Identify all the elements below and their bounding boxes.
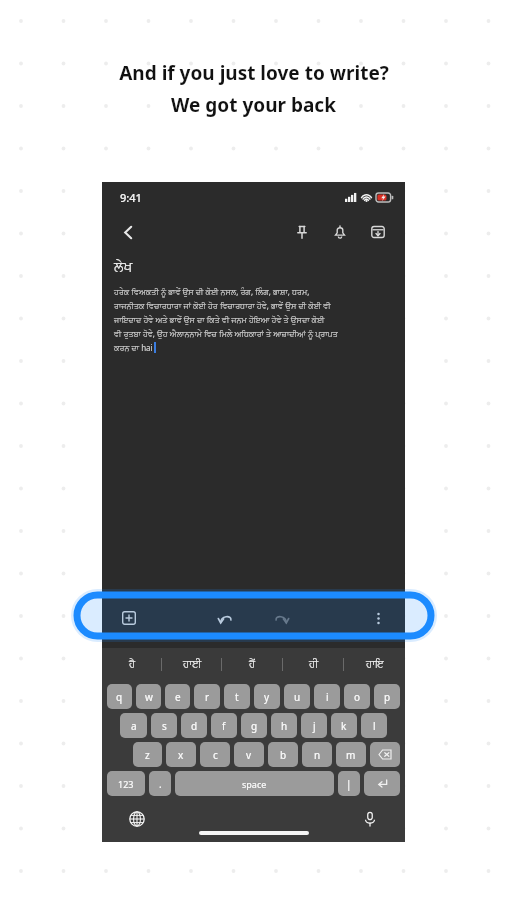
staticText: ਜਾਇਦਾਦ ਹੋਵੇ ਅਤੇ ਭਾਵੇਂ ਉਸ ਦਾ ਕਿਤੇ ਵੀ ਜਨਮ … <box>114 314 325 325</box>
button[interactable]: v <box>234 742 264 767</box>
button[interactable]: w <box>136 684 161 709</box>
staticText: v <box>246 748 252 762</box>
staticText: s <box>162 719 167 733</box>
button[interactable]: s <box>151 713 177 738</box>
button[interactable]: Change language <box>124 806 150 832</box>
staticText: z <box>145 748 150 762</box>
button[interactable]: Voice input <box>357 806 383 832</box>
staticText: ਹਰੇਕ ਵਿਅਕਤੀ ਨੂੰ ਭਾਵੇਂ ਉਸ ਦੀ ਕੋਈ ਨਸਲ, ਰੰਗ… <box>114 286 310 297</box>
button[interactable]: ਹੀ <box>283 648 344 680</box>
staticText: k <box>341 719 347 733</box>
button[interactable]: e <box>165 684 190 709</box>
staticText: | <box>346 777 352 791</box>
button[interactable]: k <box>331 713 357 738</box>
staticText: ਹੀ <box>309 659 319 669</box>
button[interactable]: | <box>338 771 360 796</box>
staticText: ਹੈਂ <box>249 659 256 669</box>
button[interactable]: space <box>175 771 334 796</box>
button[interactable]: Back <box>114 218 142 246</box>
button[interactable]: d <box>181 713 207 738</box>
staticText: b <box>280 748 287 762</box>
button[interactable]: ਹਾਇ <box>344 648 405 680</box>
staticText: a <box>131 719 137 733</box>
button[interactable]: t <box>224 684 250 709</box>
staticText: w <box>145 690 153 704</box>
button[interactable]: y <box>254 684 280 709</box>
button[interactable]: q <box>107 684 132 709</box>
button[interactable]: ਹੈ <box>102 648 162 680</box>
button[interactable]: Undo <box>210 603 240 633</box>
staticText: o <box>354 690 361 704</box>
button[interactable]: 123 <box>107 771 145 796</box>
staticText: space <box>242 778 267 790</box>
button[interactable]: m <box>336 742 366 767</box>
staticText: n <box>314 748 321 762</box>
staticText: e <box>175 690 181 704</box>
button[interactable]: . <box>149 771 171 796</box>
staticText: ਹਾਇ <box>366 659 384 669</box>
button[interactable]: f <box>211 713 237 738</box>
staticText: h <box>281 719 288 733</box>
button[interactable]: b <box>268 742 298 767</box>
button[interactable]: r <box>194 684 220 709</box>
staticText: i <box>326 690 329 704</box>
staticText: We got your back <box>171 92 336 118</box>
button[interactable]: ਹਾਈ <box>162 648 222 680</box>
button[interactable]: More options <box>365 605 391 631</box>
button[interactable]: Redo <box>266 603 296 633</box>
button[interactable]: Archive <box>363 217 393 247</box>
button[interactable]: h <box>271 713 297 738</box>
button[interactable]: x <box>166 742 196 767</box>
button[interactable]: Add <box>116 605 142 631</box>
button[interactable]: i <box>314 684 340 709</box>
button[interactable]: Pin <box>287 217 317 247</box>
staticText: g <box>251 719 258 733</box>
staticText: ਹਾਈ <box>183 659 202 669</box>
staticText: x <box>178 748 184 762</box>
button[interactable]: z <box>133 742 162 767</box>
staticText: m <box>346 748 356 762</box>
staticText: f <box>222 719 226 733</box>
button[interactable]: j <box>301 713 327 738</box>
staticText: ਰਾਜਨੀਤਕ ਵਿਚਾਰਧਾਰਾ ਜਾਂ ਕੋਈ ਹੋਰ ਵਿਚਾਰਧਾਰਾ … <box>114 300 331 311</box>
staticText: y <box>264 690 270 704</box>
button[interactable]: o <box>344 684 370 709</box>
button[interactable]: ਹੈਂ <box>222 648 283 680</box>
button[interactable]: p <box>374 684 400 709</box>
staticText: t <box>235 690 239 704</box>
staticText: 9:41 <box>120 190 142 205</box>
staticText: d <box>191 719 198 733</box>
staticText: ਹੈ <box>129 659 136 669</box>
staticText: j <box>313 719 316 733</box>
staticText: 123 <box>118 778 134 790</box>
button[interactable]: n <box>302 742 332 767</box>
button[interactable]: Enter <box>364 771 400 796</box>
button[interactable]: a <box>120 713 147 738</box>
staticText: ਲੇਖ <box>114 260 133 274</box>
staticText: ਵੀ ਰੁਤਬਾ ਹੋਵੇ, ਉਹ ਐਲਾਨਨਾਮੇ ਵਿਚ ਮਿਲੇ ਅਧਿਕ… <box>114 328 338 339</box>
button[interactable]: c <box>200 742 230 767</box>
staticText: ਕਰਨ ਦਾ hai <box>114 342 153 353</box>
button[interactable]: Backspace <box>370 742 400 767</box>
button[interactable]: l <box>361 713 387 738</box>
button[interactable]: g <box>241 713 267 738</box>
staticText: c <box>213 748 218 762</box>
staticText: u <box>294 690 301 704</box>
staticText: . <box>159 777 162 791</box>
staticText: q <box>116 690 123 704</box>
button[interactable]: Reminder <box>325 217 355 247</box>
button[interactable]: u <box>284 684 310 709</box>
staticText: p <box>384 690 391 704</box>
staticText: r <box>205 690 210 704</box>
staticText: And if you just love to write? <box>119 60 389 86</box>
staticText: l <box>373 719 376 733</box>
